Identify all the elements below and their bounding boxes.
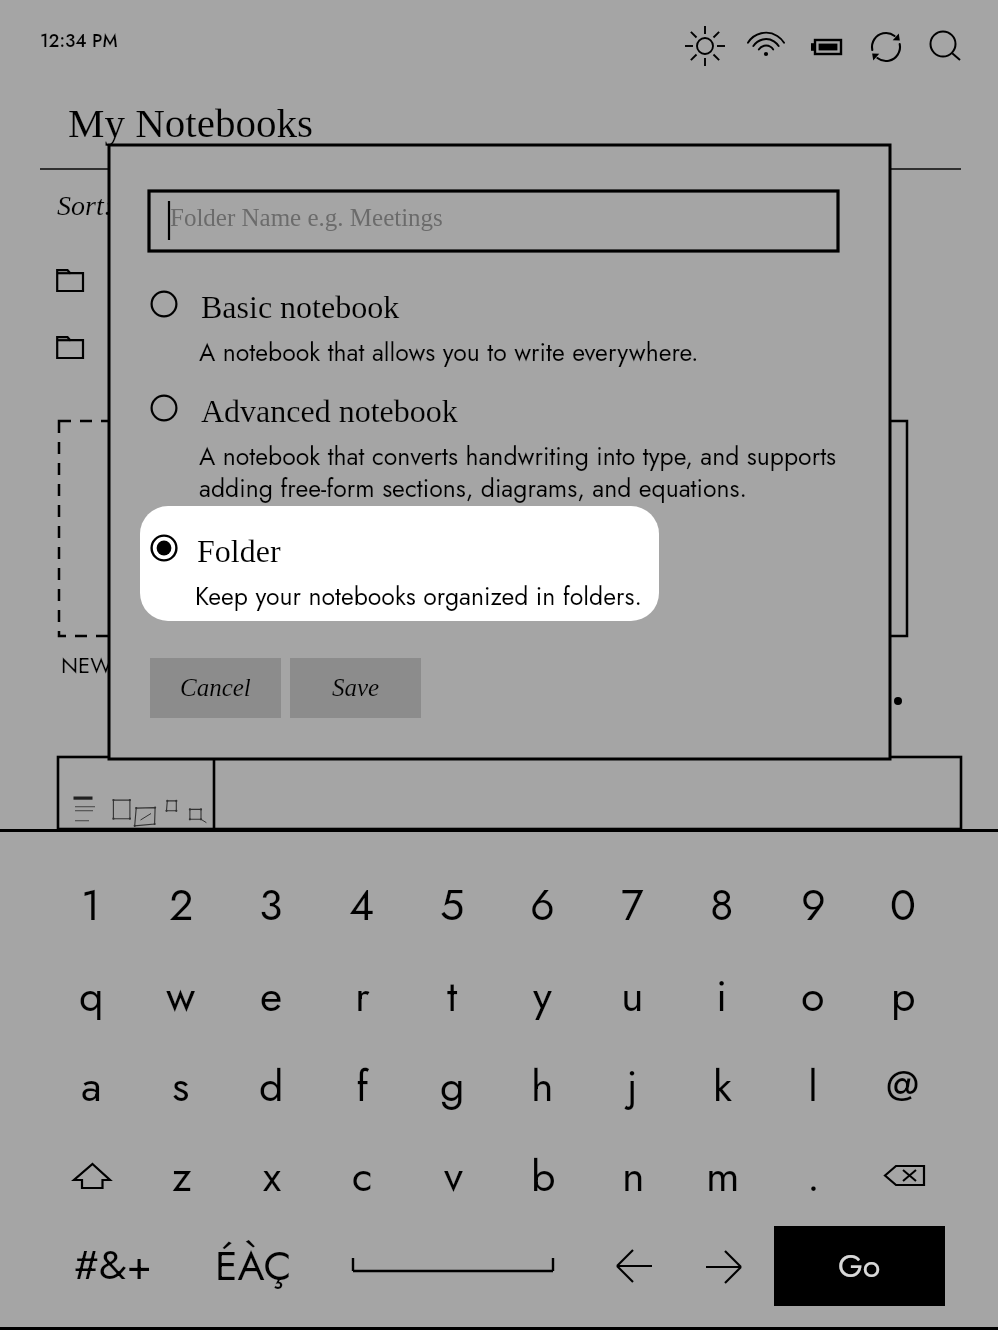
button[interactable]: y xyxy=(504,962,580,1030)
button[interactable]: h xyxy=(504,1052,580,1120)
button[interactable]: Wi-Fi xyxy=(742,22,790,70)
staticText: 5 xyxy=(440,874,465,936)
button[interactable]: Folder Name e.g. Meetings xyxy=(149,191,838,251)
button[interactable]: v xyxy=(415,1142,491,1210)
staticText: j xyxy=(627,1055,638,1117)
staticText: ÉÀÇ xyxy=(215,1236,292,1295)
button[interactable]: f xyxy=(324,1052,400,1120)
button[interactable]: 6 xyxy=(504,871,580,939)
staticText: e xyxy=(260,965,283,1027)
staticText: 4 xyxy=(349,874,375,936)
button[interactable]: j xyxy=(594,1052,670,1120)
button[interactable]: Battery xyxy=(806,22,850,70)
button[interactable]: 1 xyxy=(53,871,129,939)
staticText: m xyxy=(706,1145,740,1207)
button[interactable]: Move right xyxy=(696,1241,752,1293)
button[interactable]: Space xyxy=(345,1249,561,1283)
button[interactable]: 9 xyxy=(775,871,851,939)
button[interactable]: k xyxy=(684,1052,760,1120)
staticText: adding free-form sections, diagrams, and… xyxy=(199,470,748,506)
button[interactable]: Search xyxy=(919,20,967,68)
button[interactable]: b xyxy=(505,1142,581,1210)
button[interactable]: Move left xyxy=(607,1240,663,1292)
button[interactable]: 7 xyxy=(594,871,670,939)
button[interactable]: t xyxy=(414,962,490,1030)
button[interactable]: 8 xyxy=(684,871,760,939)
button[interactable]: Basic notebook xyxy=(150,289,850,385)
staticText: 9 xyxy=(801,874,826,936)
staticText: Basic notebook xyxy=(201,289,400,324)
staticText: @ xyxy=(886,1055,920,1117)
staticText: Go xyxy=(838,1243,881,1289)
button[interactable]: 5 xyxy=(414,871,490,939)
staticText: e xyxy=(880,645,892,674)
staticText: Advanced notebook xyxy=(201,393,458,428)
button[interactable]: o xyxy=(775,962,851,1030)
staticText: #&+ xyxy=(74,1235,152,1294)
staticText: 1 xyxy=(81,874,101,936)
button[interactable]: Save xyxy=(290,658,421,718)
button[interactable]: Folder xyxy=(140,506,659,621)
button[interactable]: Advanced notebook xyxy=(150,393,850,489)
button[interactable]: i xyxy=(684,962,760,1030)
staticText: r xyxy=(355,965,370,1027)
staticText: A notebook that allows you to write ever… xyxy=(199,334,699,370)
button[interactable]: r xyxy=(324,962,400,1030)
button[interactable]: 4 xyxy=(324,871,400,939)
button[interactable]: m xyxy=(685,1142,761,1210)
staticText: v xyxy=(444,1145,463,1207)
staticText: q xyxy=(79,965,104,1027)
staticText: x xyxy=(263,1145,282,1207)
button[interactable]: 0 xyxy=(865,871,941,939)
staticText: g xyxy=(440,1055,465,1117)
staticText: Save xyxy=(332,674,380,702)
staticText: A notebook that converts handwriting int… xyxy=(199,438,837,474)
staticText: b xyxy=(531,1145,556,1207)
staticText: k xyxy=(713,1055,732,1117)
button[interactable]: 2 xyxy=(143,871,219,939)
button[interactable]: Backspace xyxy=(880,1159,930,1193)
button[interactable]: s xyxy=(143,1052,219,1120)
staticText: l xyxy=(808,1055,818,1117)
button[interactable]: n xyxy=(595,1142,671,1210)
button[interactable]: a xyxy=(53,1052,129,1120)
staticText: d xyxy=(259,1055,284,1117)
staticText: Cancel xyxy=(180,674,251,702)
staticText: y xyxy=(533,965,552,1027)
staticText: z xyxy=(172,1145,192,1207)
button[interactable]: w xyxy=(143,962,219,1030)
staticText: Folder Name e.g. Meetings xyxy=(170,204,443,232)
button[interactable]: . xyxy=(775,1142,851,1210)
button[interactable]: Go xyxy=(774,1226,945,1306)
button[interactable]: #&+ xyxy=(53,1230,173,1298)
button[interactable]: Brightness xyxy=(681,22,729,70)
button[interactable]: x xyxy=(234,1142,310,1210)
staticText: 12:34 PM xyxy=(40,28,118,54)
button[interactable]: q xyxy=(53,962,129,1030)
staticText: 3 xyxy=(259,874,283,936)
staticText: Folder xyxy=(197,533,281,568)
button[interactable]: u xyxy=(594,962,670,1030)
button[interactable]: Cancel xyxy=(150,658,281,718)
button[interactable]: c xyxy=(324,1142,400,1210)
button[interactable]: p xyxy=(865,962,941,1030)
button[interactable]: g xyxy=(414,1052,490,1120)
staticText: p xyxy=(891,965,916,1027)
button[interactable]: ÉÀÇ xyxy=(193,1231,313,1299)
staticText: f xyxy=(356,1055,369,1117)
staticText: NEW xyxy=(61,649,112,681)
button[interactable]: e xyxy=(233,962,309,1030)
button[interactable]: d xyxy=(233,1052,309,1120)
button[interactable]: l xyxy=(775,1052,851,1120)
button[interactable]: Shift xyxy=(66,1149,122,1201)
staticText: 0 xyxy=(890,874,916,936)
button[interactable]: @ xyxy=(865,1052,941,1120)
staticText: w xyxy=(166,965,196,1027)
button[interactable]: z xyxy=(144,1142,220,1210)
staticText: Sort: xyxy=(57,190,113,221)
staticText: t xyxy=(447,965,458,1027)
button[interactable]: 3 xyxy=(233,871,309,939)
staticText: a xyxy=(81,1055,102,1117)
button[interactable]: Refresh xyxy=(862,23,910,71)
staticText: s xyxy=(172,1055,190,1117)
